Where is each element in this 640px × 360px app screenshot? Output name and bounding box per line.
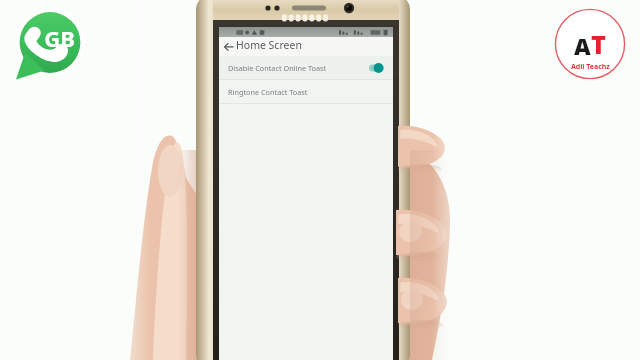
- staticText: GB: [44, 23, 75, 53]
- staticText: Home Screen: [236, 38, 302, 52]
- staticText: Ringtone Contact Toast: [228, 87, 308, 97]
- staticText: T: [591, 27, 606, 61]
- button[interactable]: Back: [222, 37, 236, 51]
- button[interactable]: Disable Contact Online Toast: [219, 56, 393, 80]
- button[interactable]: Ringtone Contact Toast: [219, 80, 393, 104]
- staticText: Adil Teachz: [571, 62, 610, 72]
- button[interactable]: Adil Teachz: [552, 6, 628, 82]
- staticText: Disable Contact Online Toast: [228, 63, 327, 73]
- staticText: A: [574, 30, 591, 61]
- button[interactable]: Home Screen: [236, 38, 316, 54]
- button[interactable]: GB WhatsApp: [12, 6, 88, 82]
